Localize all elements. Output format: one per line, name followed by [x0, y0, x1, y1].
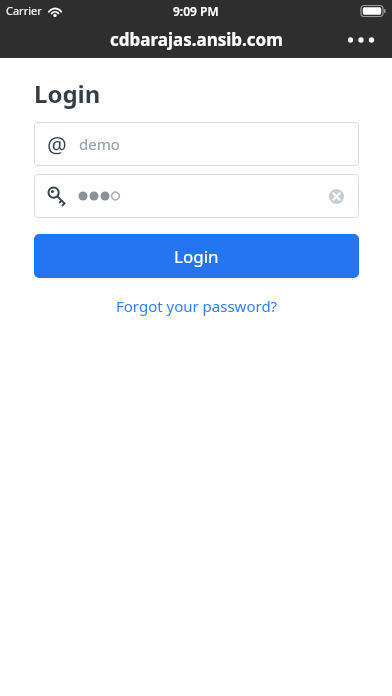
staticText: Login	[34, 77, 101, 110]
staticText: cdbarajas.ansib.com	[110, 28, 283, 51]
button[interactable]	[34, 174, 359, 218]
staticText: demo	[79, 134, 120, 154]
button[interactable]: Login	[34, 234, 359, 278]
button[interactable]	[347, 35, 375, 45]
staticText: Carrier	[6, 3, 42, 18]
staticText: Login	[174, 245, 219, 268]
button[interactable]	[329, 189, 344, 204]
button[interactable]: @	[34, 122, 359, 166]
button[interactable]: Forgot your password?	[116, 296, 278, 316]
staticText: 9:09 PM	[173, 3, 219, 19]
staticText: Forgot your password?	[116, 296, 278, 316]
staticText: @	[47, 129, 67, 159]
